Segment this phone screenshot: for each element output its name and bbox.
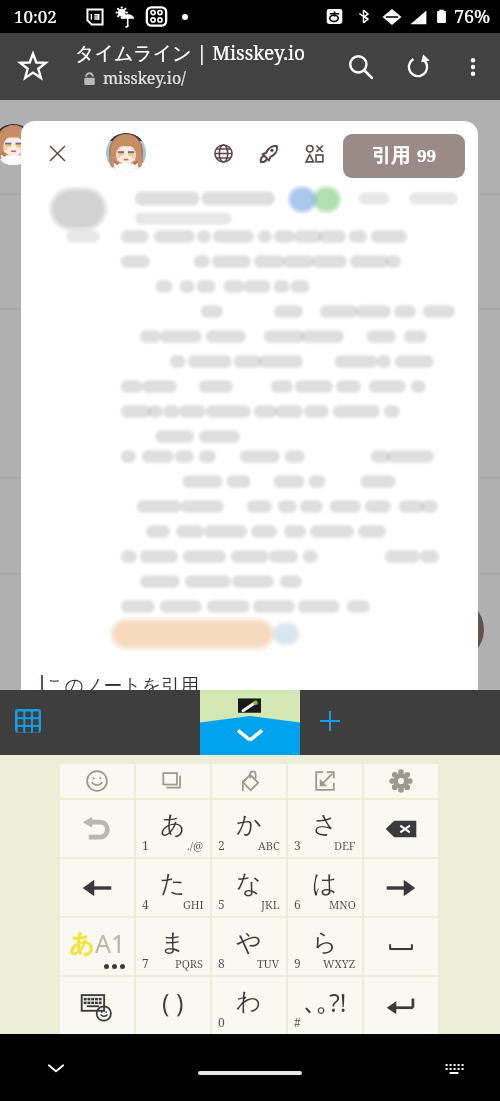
button[interactable]: left (60, 859, 134, 916)
staticText: 引用 (372, 144, 410, 168)
button[interactable]: window (136, 764, 210, 798)
button[interactable]: Emoji (295, 134, 333, 172)
staticText: な (236, 868, 262, 899)
staticText: た (160, 868, 186, 899)
button[interactable]: 引用 (343, 134, 465, 178)
button[interactable]: Visibility (204, 134, 242, 172)
staticText: TUV (257, 956, 280, 971)
staticText: misskey.io/ (103, 67, 186, 89)
button[interactable]: な (212, 859, 286, 916)
staticText: タイムライン | Misskey.io (75, 40, 305, 66)
button[interactable]: kbd (60, 977, 134, 1034)
staticText: ら (312, 927, 338, 958)
staticText: 8 (218, 955, 225, 971)
button[interactable]: Switch keyboard (436, 1050, 472, 1086)
button[interactable]: right (364, 859, 438, 916)
staticText: ま (160, 927, 186, 958)
staticText: 4 (142, 896, 149, 912)
staticText: 99 (417, 144, 437, 167)
staticText: GHI (183, 897, 204, 912)
button[interactable]: mode (60, 918, 134, 975)
button[interactable]: Clip thumbnail (200, 690, 300, 755)
staticText: は (312, 868, 338, 899)
staticText: あ (160, 809, 186, 840)
staticText: や (236, 927, 262, 958)
staticText: JKL (261, 897, 280, 912)
staticText: 0 (218, 1014, 225, 1030)
staticText: 6 (294, 896, 301, 912)
staticText: このノートを引用 (45, 674, 200, 690)
staticText: A1 (95, 926, 126, 960)
staticText: 1 (142, 837, 149, 853)
staticText: 2 (218, 837, 225, 853)
staticText: 76% (454, 4, 491, 29)
button[interactable]: ､｡?! (288, 977, 362, 1034)
staticText: ､｡?! (304, 985, 347, 1019)
button[interactable]: ま (136, 918, 210, 975)
staticText: ABC (258, 838, 280, 853)
staticText: 3 (294, 837, 301, 853)
staticText: あ (69, 928, 95, 959)
button[interactable]: Close (37, 133, 77, 173)
staticText: # (294, 1014, 301, 1030)
button[interactable]: Clipboard (6, 699, 50, 743)
button[interactable]: brush (212, 764, 286, 798)
staticText: わ (236, 986, 262, 1017)
staticText: 5 (218, 896, 225, 912)
button[interactable]: Hide keyboard (38, 1050, 74, 1086)
button[interactable]: わ (212, 977, 286, 1034)
button[interactable]: さ (288, 800, 362, 857)
staticText: さ (312, 809, 338, 840)
button[interactable]: Bookmark (11, 45, 55, 89)
button[interactable]: space (364, 918, 438, 975)
staticText: DEF (334, 838, 356, 853)
button[interactable]: enter (364, 977, 438, 1034)
button[interactable]: More options (454, 48, 492, 86)
button[interactable]: undo (60, 800, 134, 857)
button[interactable]: た (136, 859, 210, 916)
button[interactable]: Reload (395, 44, 440, 89)
staticText: ./@ (187, 838, 204, 853)
staticText: ( ) (162, 985, 184, 1019)
button[interactable]: ( ) (136, 977, 210, 1034)
button[interactable]: ら (288, 918, 362, 975)
staticText: か (236, 809, 262, 840)
button[interactable]: Add (308, 699, 352, 743)
staticText: 7 (142, 955, 149, 971)
button[interactable]: gear (364, 764, 438, 798)
staticText: MNO (329, 897, 356, 912)
button[interactable]: か (212, 800, 286, 857)
staticText: 10:02 (14, 5, 57, 28)
button[interactable]: Compose note (421, 598, 484, 661)
button[interactable]: Boost (249, 134, 287, 172)
staticText: PQRS (175, 956, 204, 971)
button[interactable]: del (364, 800, 438, 857)
button[interactable]: や (212, 918, 286, 975)
button[interactable]: は (288, 859, 362, 916)
button[interactable]: Search (338, 44, 383, 89)
button[interactable]: Account (106, 133, 146, 173)
staticText: 9 (294, 955, 301, 971)
button[interactable]: share (288, 764, 362, 798)
button[interactable]: あ (136, 800, 210, 857)
staticText: WXYZ (323, 956, 356, 971)
button[interactable]: smile (60, 764, 134, 798)
